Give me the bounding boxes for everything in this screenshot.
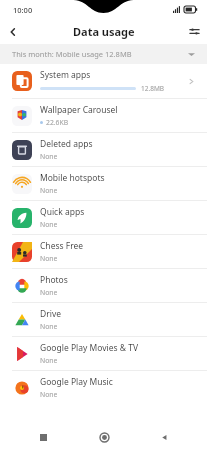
staticText: Data usage <box>73 24 135 39</box>
staticText: Google Play Music <box>40 376 113 388</box>
button[interactable]: Chess Free <box>0 235 207 268</box>
staticText: None <box>40 152 58 161</box>
staticText: Google Play Movies & TV <box>40 342 139 354</box>
button[interactable]: Google Play Movies & TV <box>0 337 207 370</box>
staticText: System apps <box>40 69 91 81</box>
staticText: 10:00 <box>13 5 33 15</box>
staticText: None <box>40 390 58 399</box>
button[interactable]: Quick apps <box>0 201 207 234</box>
button[interactable]: Google Play Music <box>0 371 207 404</box>
staticText: Mobile hotspots <box>40 172 105 184</box>
staticText: Chess Free <box>40 240 84 252</box>
staticText: 22.6KB <box>46 118 69 127</box>
button[interactable]: System apps <box>0 64 207 98</box>
button[interactable]: Back <box>0 19 26 44</box>
staticText: None <box>40 288 58 297</box>
staticText: None <box>40 220 58 229</box>
button[interactable]: Mobile hotspots <box>0 167 207 200</box>
button[interactable]: Back <box>147 424 181 450</box>
button[interactable]: Drive <box>0 303 207 336</box>
button[interactable]: Home <box>87 424 121 450</box>
staticText: None <box>40 356 58 365</box>
staticText: This month: Mobile usage 12.8MB <box>12 49 132 59</box>
button[interactable]: Recents <box>26 424 60 450</box>
staticText: None <box>40 322 58 331</box>
staticText: None <box>40 186 58 195</box>
button[interactable]: Settings <box>181 19 207 44</box>
button[interactable]: Wallpaper Carousel <box>0 99 207 132</box>
staticText: Quick apps <box>40 206 85 218</box>
staticText: Deleted apps <box>40 138 93 150</box>
button[interactable]: Deleted apps <box>0 133 207 166</box>
staticText: None <box>40 254 58 263</box>
button[interactable]: This month: Mobile usage 12.8MB <box>0 44 207 64</box>
button[interactable]: Photos <box>0 269 207 302</box>
staticText: Wallpaper Carousel <box>40 104 118 116</box>
staticText: 12.8MB <box>141 84 165 93</box>
staticText: Photos <box>40 274 68 286</box>
staticText: Drive <box>40 308 62 320</box>
